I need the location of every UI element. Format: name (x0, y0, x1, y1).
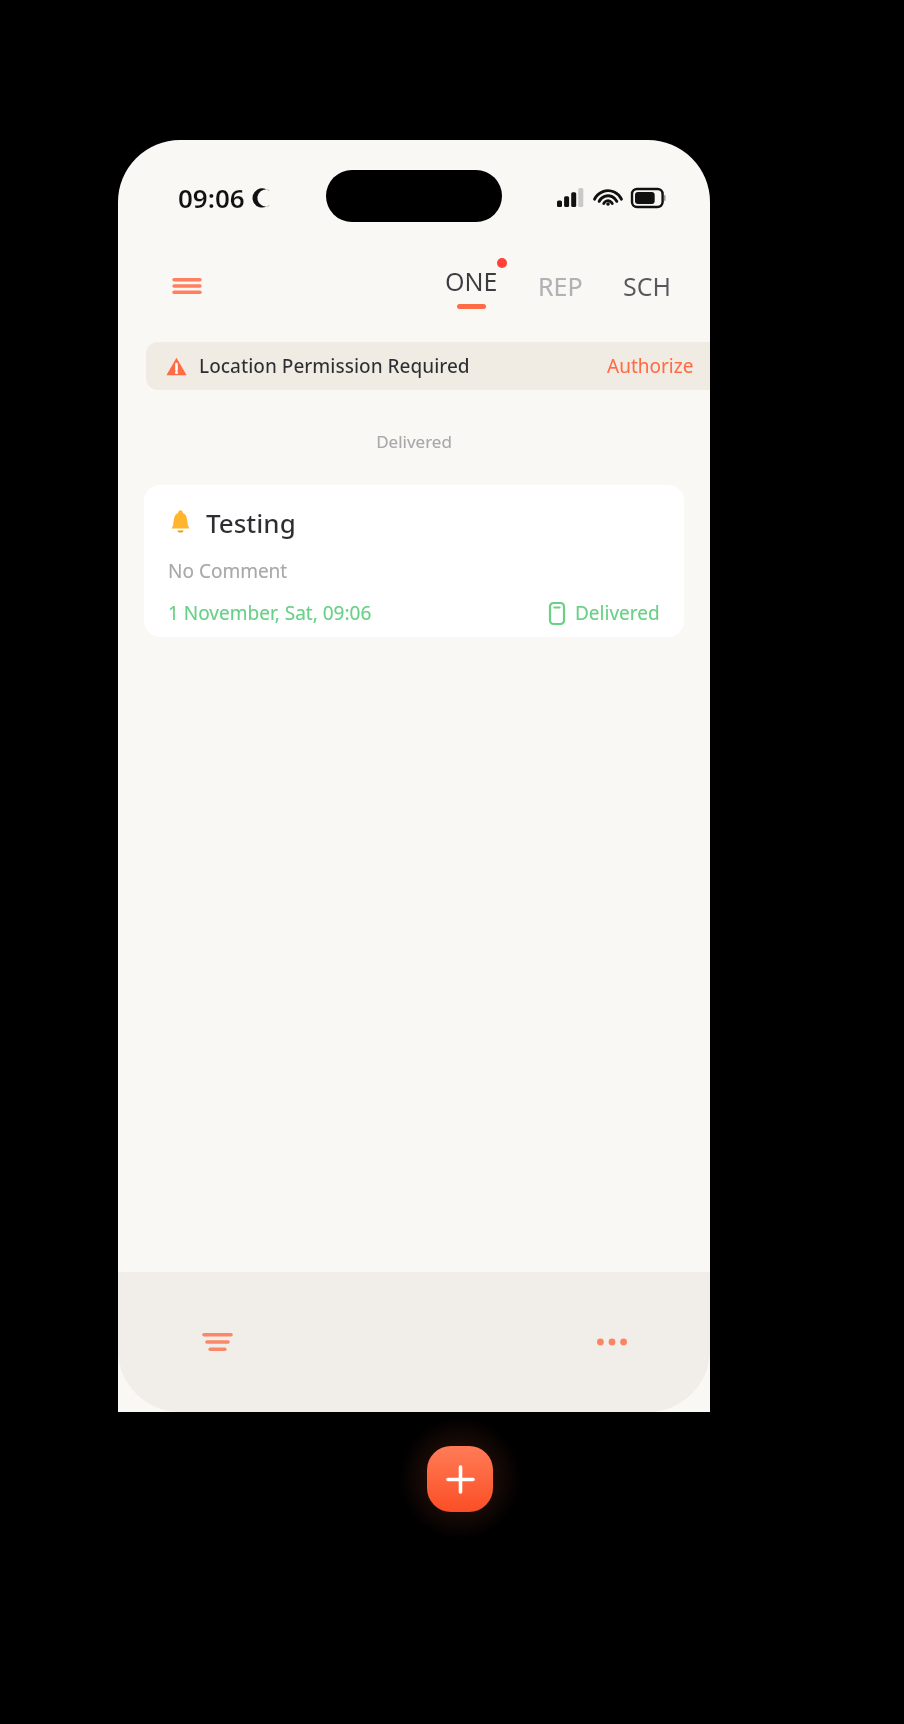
button[interactable]: More options (513, 1272, 710, 1412)
staticText: Authorize (607, 353, 694, 379)
button[interactable]: Location Permission Required (146, 342, 710, 390)
staticText: Testing (206, 505, 296, 540)
staticText: Delivered (118, 430, 710, 453)
staticText: 09:06 (178, 180, 245, 215)
button[interactable]: Menu (166, 265, 208, 307)
staticText: ONE (445, 264, 498, 298)
button[interactable]: ONE (437, 264, 506, 309)
button[interactable]: Add (427, 1446, 493, 1512)
button[interactable]: SCH (615, 263, 680, 309)
button[interactable]: REP (530, 263, 591, 309)
staticText: Delivered (575, 600, 660, 626)
staticText: REP (538, 269, 583, 303)
button[interactable]: Filter (118, 1272, 316, 1412)
staticText: Location Permission Required (199, 353, 470, 379)
staticText: SCH (623, 269, 672, 303)
button[interactable]: Testing (144, 485, 684, 637)
staticText: No Comment (168, 558, 288, 584)
staticText: 1 November, Sat, 09:06 (168, 600, 372, 626)
